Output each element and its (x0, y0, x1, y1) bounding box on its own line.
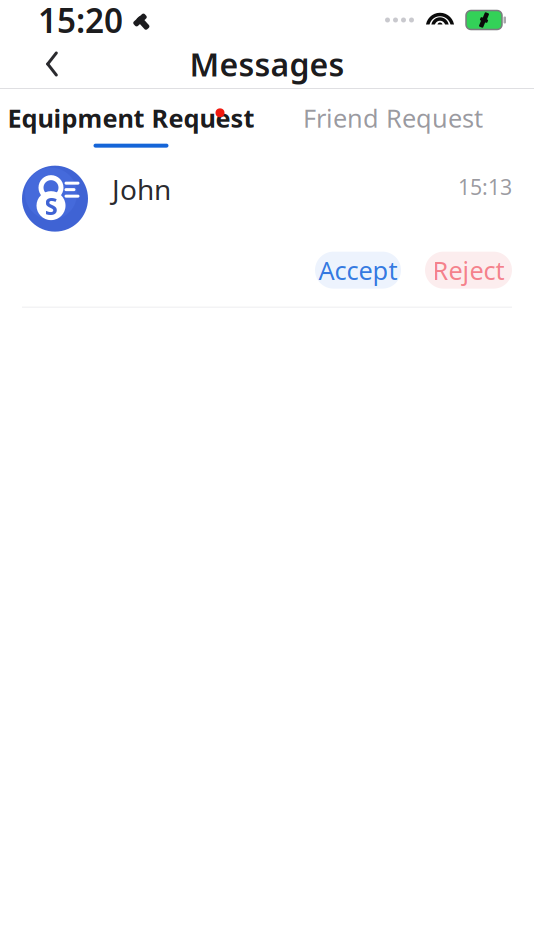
button[interactable]: Accept (315, 252, 401, 289)
button[interactable]: Reject (425, 252, 512, 289)
staticText: Reject (432, 253, 504, 287)
staticText: S (44, 190, 57, 222)
staticText: 15:13 (458, 173, 512, 201)
button[interactable]: Equipment Request (0, 89, 262, 154)
staticText: John (112, 171, 171, 208)
staticText: Messages (189, 43, 344, 85)
staticText: Equipment Request (7, 101, 254, 135)
staticText: Accept (318, 253, 397, 287)
staticText: 15:20 (38, 0, 123, 42)
staticText: Friend Request (303, 101, 483, 135)
button[interactable]: Friend Request (262, 89, 524, 154)
button[interactable]: Back (24, 40, 80, 88)
